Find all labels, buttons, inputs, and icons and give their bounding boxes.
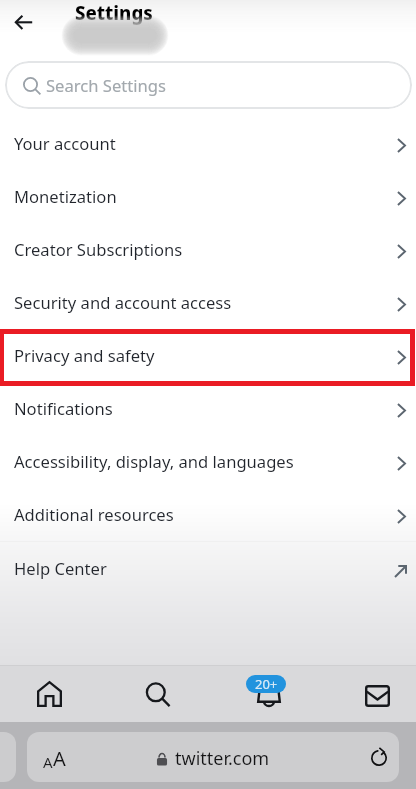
staticText: Accessibility, display, and languages xyxy=(14,450,294,473)
staticText: A xyxy=(53,745,66,772)
staticText: Your account xyxy=(14,132,116,155)
button[interactable]: Reload xyxy=(366,744,392,770)
staticText: A xyxy=(43,752,53,772)
button[interactable]: Notifications xyxy=(244,669,293,718)
staticText: Creator Subscriptions xyxy=(14,238,183,261)
staticText: Search Settings xyxy=(46,74,166,97)
staticText: Notifications xyxy=(14,397,113,420)
button[interactable]: Messages xyxy=(353,671,402,720)
staticText: Privacy and safety xyxy=(14,344,155,367)
staticText: 20+ xyxy=(255,675,278,693)
button[interactable]: Accessibility, display, and languages xyxy=(0,435,416,488)
staticText: Help Center xyxy=(14,557,107,580)
button[interactable]: Creator Subscriptions xyxy=(0,223,416,276)
staticText: Settings xyxy=(75,0,153,25)
staticText: Monetization xyxy=(14,185,117,208)
button[interactable]: Your account xyxy=(0,117,416,170)
button[interactable]: Help Center xyxy=(0,542,416,595)
button[interactable]: Notifications xyxy=(0,382,416,435)
button[interactable]: Search Settings xyxy=(5,61,412,109)
button[interactable]: Additional resources xyxy=(0,488,416,541)
staticText: Security and account access xyxy=(14,291,232,314)
button[interactable]: Security and account access xyxy=(0,276,416,329)
button[interactable]: Back xyxy=(10,8,38,36)
button[interactable]: Tabs xyxy=(0,732,16,782)
button[interactable]: Search xyxy=(133,670,182,719)
button[interactable]: Home xyxy=(25,669,74,718)
staticText: twitter.com xyxy=(175,746,270,771)
button[interactable]: Privacy and safety xyxy=(0,329,416,382)
button[interactable]: A xyxy=(27,732,399,782)
button[interactable]: Monetization xyxy=(0,170,416,223)
staticText: Additional resources xyxy=(14,503,174,526)
